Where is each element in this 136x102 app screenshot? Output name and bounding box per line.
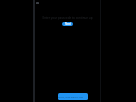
button[interactable]: Next bbox=[62, 22, 73, 26]
button[interactable]: Navigate up bbox=[35, 1, 40, 5]
button[interactable]: Sorry, that wasn't the right passcode bbox=[58, 93, 88, 100]
staticText: Next bbox=[65, 22, 71, 26]
staticText: Enter your passcode to continue up bbox=[42, 16, 93, 20]
staticText: Sorry, that wasn't the right passcode bbox=[58, 95, 88, 98]
